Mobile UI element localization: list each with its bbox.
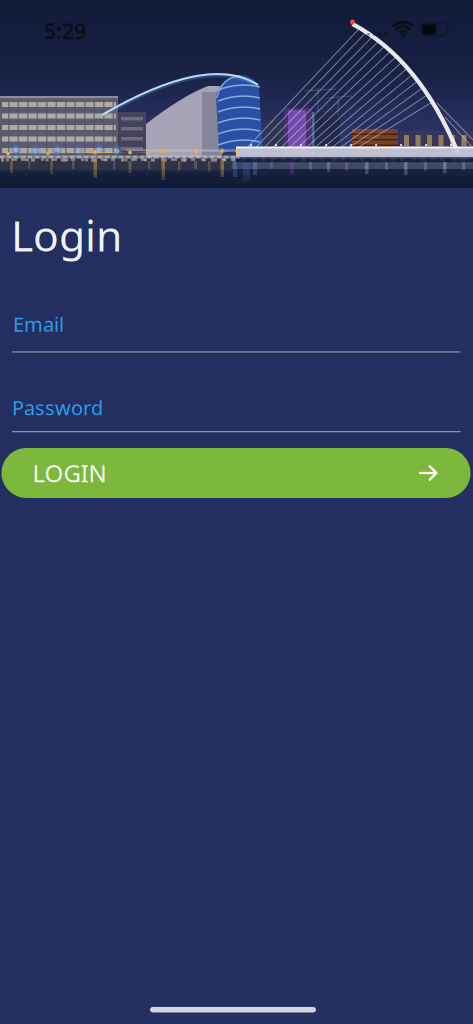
button[interactable]: Password xyxy=(12,394,460,432)
staticText: 5:29 xyxy=(44,17,86,45)
staticText: Email xyxy=(13,311,64,337)
button[interactable]: Email xyxy=(12,311,460,353)
staticText: Login xyxy=(11,206,122,263)
staticText: Password xyxy=(12,394,103,421)
staticText: LOGIN xyxy=(32,457,106,489)
button[interactable]: LOGIN xyxy=(1,448,470,498)
